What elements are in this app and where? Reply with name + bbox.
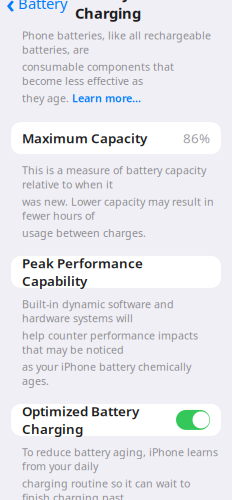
- staticText: Maximum Capacity: [22, 129, 147, 147]
- staticText: Optimized Battery Charging: [22, 402, 139, 438]
- staticText: usage between charges.: [22, 226, 146, 240]
- staticText: they age.: [22, 91, 69, 105]
- staticText: consumable components that become less e…: [22, 60, 174, 88]
- button[interactable]: Maximum Capacity: [11, 122, 221, 154]
- staticText: Peak Performance Capability: [22, 254, 143, 290]
- staticText: Battery: [18, 0, 67, 13]
- staticText: ‹: [6, 0, 15, 20]
- staticText: Built-in dynamic software and hardware s…: [22, 297, 174, 325]
- staticText: charging routine so it can wait to finis…: [22, 476, 190, 500]
- staticText: as your iPhone battery chemically ages.: [22, 360, 191, 388]
- staticText: help counter performance impacts that ma…: [22, 328, 198, 356]
- staticText: Phone batteries, like all rechargeable b…: [22, 28, 211, 57]
- staticText: This is a measure of battery capacity re…: [22, 163, 206, 191]
- staticText: 86%: [183, 129, 210, 147]
- staticText: To reduce battery aging, iPhone learns f…: [22, 445, 218, 473]
- staticText: Learn more...: [72, 91, 141, 105]
- staticText: Battery Health & Charging: [75, 0, 198, 23]
- button[interactable]: Peak Performance Capability: [11, 256, 221, 288]
- button[interactable]: Learn more...: [72, 91, 141, 105]
- button[interactable]: Optimized Battery Charging: [11, 404, 221, 436]
- button[interactable]: ‹: [0, 0, 67, 24]
- staticText: was new. Lower capacity may result in fe…: [22, 194, 214, 223]
